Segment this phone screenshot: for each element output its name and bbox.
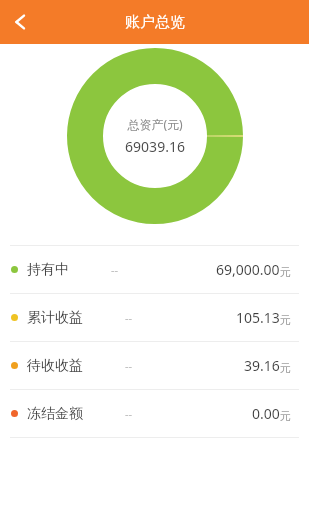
staticText: -- [125, 358, 133, 373]
staticText: 冻结金额 [27, 405, 83, 423]
staticText: 元 [280, 409, 291, 423]
staticText: 总资产(元) [127, 116, 183, 132]
staticText: 元 [280, 313, 291, 327]
staticText: -- [125, 310, 133, 325]
button[interactable]: Back [0, 0, 44, 44]
button[interactable]: 冻结金额 [0, 390, 309, 437]
staticText: -- [111, 262, 119, 277]
staticText: 账户总览 [125, 13, 185, 32]
staticText: 105.13 [236, 308, 280, 327]
staticText: 待收收益 [27, 357, 83, 375]
staticText: 69,000.00 [216, 260, 280, 279]
button[interactable]: 累计收益 [0, 294, 309, 341]
staticText: 69039.16 [125, 137, 185, 156]
staticText: 累计收益 [27, 309, 83, 327]
staticText: 元 [280, 361, 291, 375]
staticText: 元 [280, 265, 291, 279]
staticText: 0.00 [252, 404, 280, 423]
staticText: 持有中 [27, 261, 69, 279]
button[interactable]: 待收收益 [0, 342, 309, 389]
staticText: -- [125, 406, 133, 421]
button[interactable]: 持有中 [0, 246, 309, 293]
staticText: 39.16 [244, 356, 280, 375]
